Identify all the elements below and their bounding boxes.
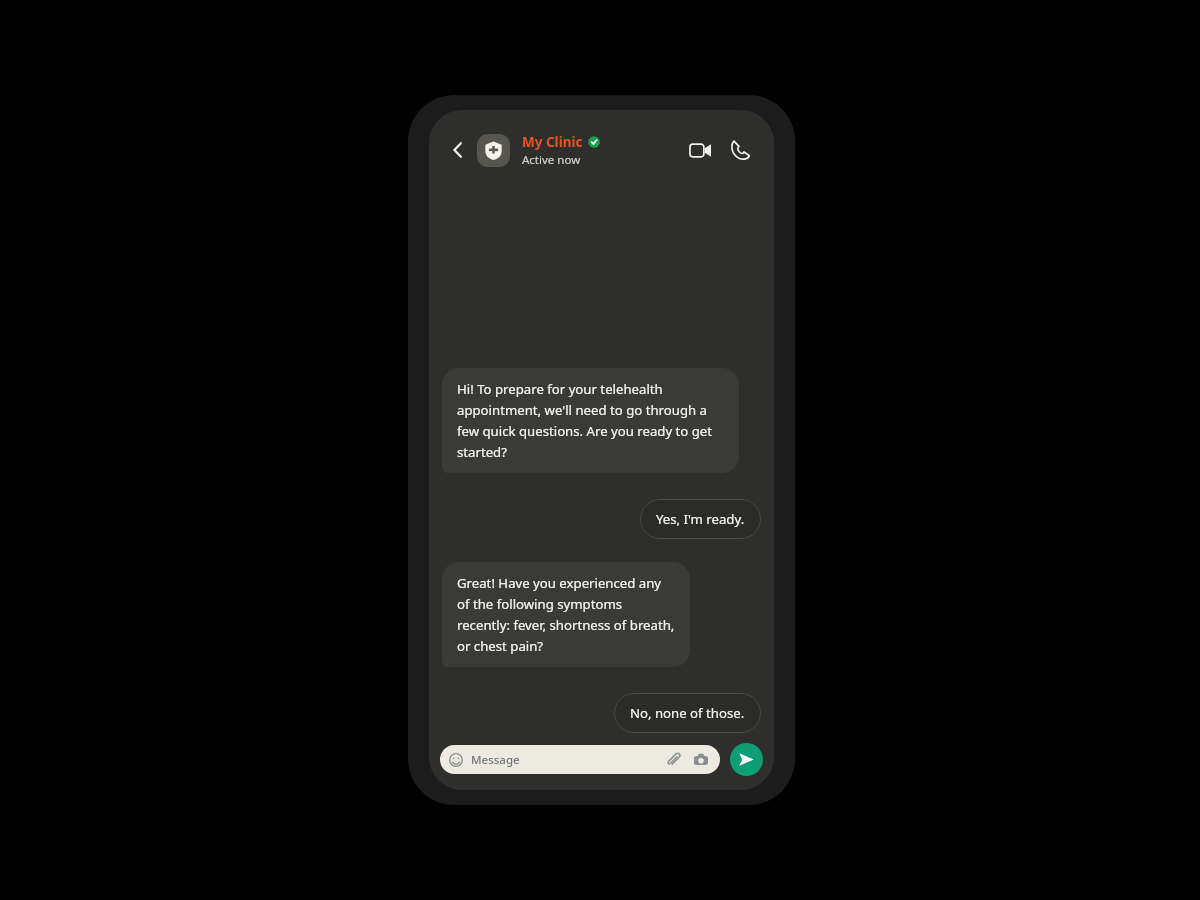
button[interactable]: Hi! To prepare for your telehealth appoi… — [442, 368, 739, 473]
button[interactable]: Voice call — [724, 134, 756, 166]
button[interactable]: Back — [443, 135, 473, 165]
button[interactable]: Attach file — [663, 750, 683, 770]
button[interactable]: Clinic avatar — [477, 134, 510, 167]
staticText: No, none of those. — [630, 704, 745, 722]
button[interactable]: Message — [440, 745, 720, 774]
button[interactable]: Video call — [684, 134, 716, 166]
staticText: Message — [471, 752, 520, 768]
button[interactable]: Camera — [691, 750, 711, 770]
staticText: Hi! To prepare for your telehealth appoi… — [457, 380, 724, 461]
staticText: My Clinic — [522, 133, 583, 151]
staticText: Great! Have you experienced any of the f… — [457, 574, 675, 655]
staticText: Yes, I'm ready. — [656, 510, 745, 528]
button[interactable]: No, none of those. — [614, 693, 761, 733]
staticText: Active now — [522, 152, 581, 168]
button[interactable]: Send — [730, 743, 763, 776]
button[interactable]: Yes, I'm ready. — [640, 499, 761, 539]
button[interactable]: Great! Have you experienced any of the f… — [442, 562, 690, 667]
